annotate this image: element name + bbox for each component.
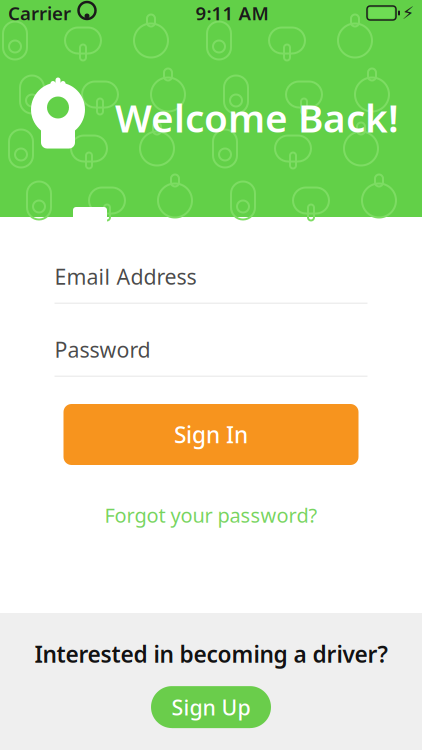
staticText: Forgot your password? bbox=[104, 502, 317, 528]
button[interactable]: Sign In bbox=[63, 404, 358, 465]
staticText: ⚡︎ bbox=[402, 3, 414, 23]
staticText: Sign Up bbox=[171, 693, 250, 721]
staticText: Interested in becoming a driver? bbox=[34, 639, 387, 669]
staticText: Password bbox=[54, 335, 150, 364]
staticText: Welcome Back! bbox=[115, 92, 399, 143]
staticText: Carrier bbox=[8, 1, 71, 25]
button[interactable]: Password bbox=[54, 335, 367, 377]
staticText: 9:11 AM bbox=[195, 1, 268, 25]
button[interactable]: Forgot your password? bbox=[63, 503, 358, 527]
button[interactable]: Sign Up bbox=[151, 686, 271, 728]
button[interactable]: Email Address bbox=[54, 262, 367, 304]
staticText: Sign In bbox=[174, 419, 248, 449]
staticText: Email Address bbox=[54, 262, 196, 291]
